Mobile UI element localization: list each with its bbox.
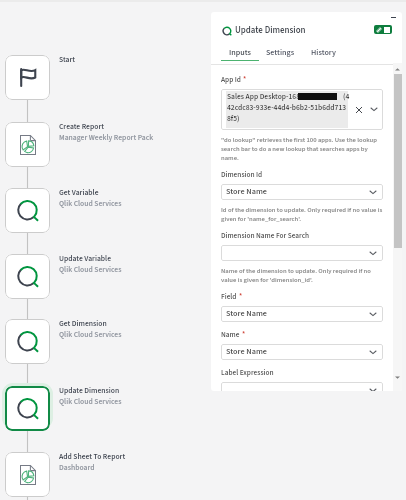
staticText: "do lookup" retrieves the first 100 apps… xyxy=(221,135,383,162)
staticText: Get Variable xyxy=(59,187,99,198)
staticText: Get Dimension xyxy=(59,318,107,329)
staticText: Update Dimension xyxy=(59,385,120,396)
button[interactable]: Link toggle xyxy=(374,25,392,34)
staticText: Qlik Cloud Services xyxy=(59,198,122,209)
staticText: * xyxy=(243,75,247,85)
staticText: History xyxy=(311,47,336,58)
staticText: Qlik Cloud Services xyxy=(59,396,122,407)
staticText: Name of the dimension to update. Only re… xyxy=(221,266,383,284)
staticText: Create Report xyxy=(59,121,104,132)
staticText: Field xyxy=(221,292,237,302)
staticText: 42cdc83-933e-44d4-b6b2-51b6dd713 xyxy=(227,102,347,113)
button[interactable] xyxy=(221,245,383,261)
staticText: Qlik Cloud Services xyxy=(59,264,122,275)
button[interactable]: Clear xyxy=(356,107,362,113)
staticText: (4 xyxy=(343,91,350,102)
button[interactable] xyxy=(5,55,50,100)
staticText: Name xyxy=(221,330,240,340)
staticText: Settings xyxy=(266,47,295,58)
button[interactable]: Inputs xyxy=(221,47,259,61)
staticText: Qlik Cloud Services xyxy=(59,329,122,340)
staticText: Update Dimension xyxy=(235,24,306,37)
button[interactable] xyxy=(5,254,50,299)
button[interactable]: Store Name xyxy=(221,184,383,200)
button[interactable] xyxy=(5,319,50,364)
staticText: 8f5) xyxy=(227,113,240,124)
button[interactable]: Store Name xyxy=(221,344,383,360)
button[interactable] xyxy=(5,452,50,497)
staticText: Dimension Id xyxy=(221,170,263,180)
button[interactable]: Expand xyxy=(369,104,379,114)
button[interactable] xyxy=(221,382,383,391)
button[interactable]: History xyxy=(301,47,345,61)
staticText: Inputs xyxy=(229,47,251,58)
button[interactable]: Minimize xyxy=(385,12,401,26)
staticText: Add Sheet To Report xyxy=(59,451,126,462)
staticText: Sales App Desktop-168 xyxy=(227,91,301,102)
staticText: Dashboard xyxy=(59,462,95,473)
button[interactable] xyxy=(5,188,50,233)
staticText: Start xyxy=(59,54,76,65)
staticText: App Id xyxy=(221,75,241,85)
button[interactable]: Settings xyxy=(259,47,301,61)
staticText: Store Name xyxy=(226,308,267,320)
button[interactable] xyxy=(5,386,50,431)
button[interactable] xyxy=(5,122,50,167)
staticText: Store Name xyxy=(226,186,267,198)
staticText: Label Expression xyxy=(221,368,274,378)
staticText: Update Variable xyxy=(59,253,112,264)
staticText: Store Name xyxy=(226,346,267,358)
staticText: Id of the dimension to update. Only requ… xyxy=(221,205,383,223)
button[interactable]: Store Name xyxy=(221,306,383,322)
staticText: * xyxy=(242,330,246,340)
staticText: Dimension Name For Search xyxy=(221,231,310,241)
staticText: * xyxy=(239,292,243,302)
button[interactable]: Sales App Desktop-168 xyxy=(221,89,383,130)
staticText: Manager Weekly Report Pack xyxy=(59,132,154,143)
